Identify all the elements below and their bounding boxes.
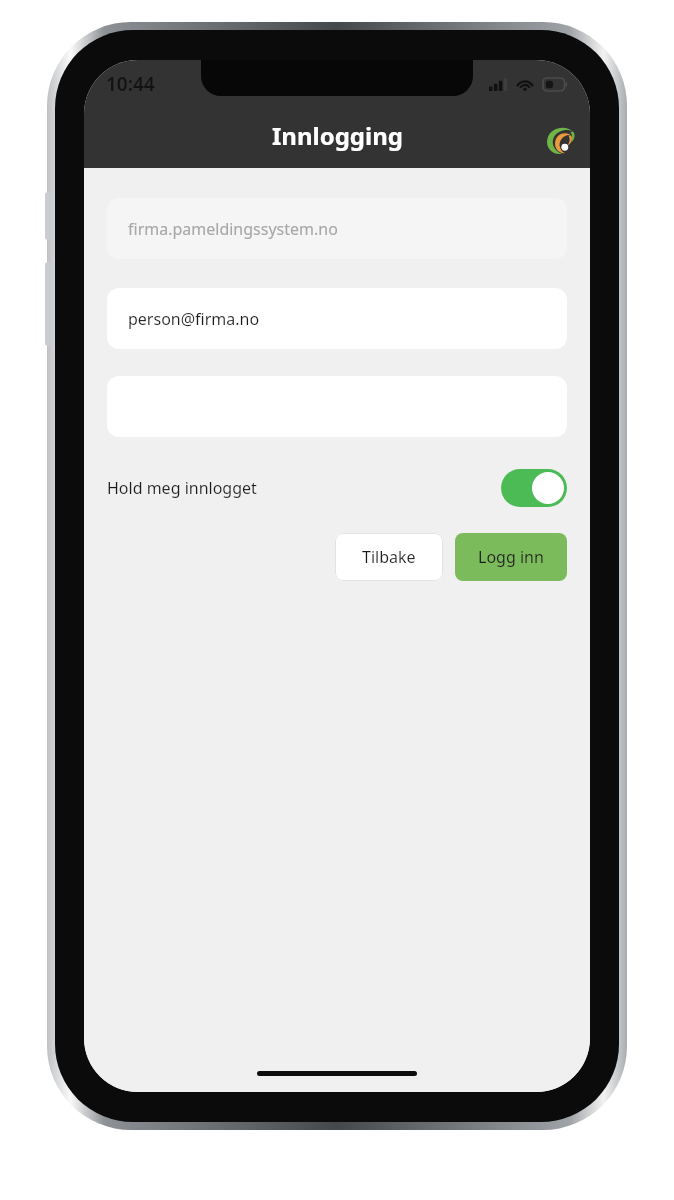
button[interactable]: person@firma.no (107, 288, 567, 349)
staticText: Innlogging (272, 119, 403, 152)
staticText: Logg inn (478, 546, 544, 568)
staticText: Tilbake (362, 546, 416, 568)
staticText: Hold meg innlogget (107, 477, 257, 499)
button[interactable]: firma.pameldingssystem.no (107, 198, 567, 259)
button[interactable]: Logg inn (455, 533, 567, 581)
button[interactable]: App logo (542, 122, 578, 158)
staticText: 10:44 (106, 71, 155, 97)
button[interactable]: Hold meg innlogget toggle (501, 469, 567, 507)
button[interactable]: Hold meg innlogget (107, 463, 567, 513)
button[interactable]: Tilbake (335, 533, 443, 581)
staticText: firma.pameldingssystem.no (128, 218, 338, 240)
staticText: person@firma.no (128, 308, 260, 330)
